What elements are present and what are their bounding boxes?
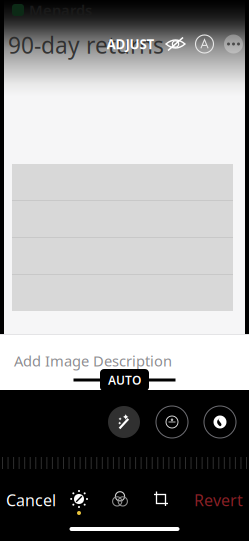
staticText: AUTO [108, 372, 141, 388]
button[interactable]: Auto enhance [108, 406, 140, 438]
button[interactable]: Add Image Description [0, 343, 172, 378]
staticText: Revert [194, 489, 243, 511]
button[interactable]: Exposure [156, 406, 188, 438]
button[interactable]: Live Text [190, 33, 219, 55]
button[interactable]: Crop [143, 485, 179, 515]
staticText: ADJUST [106, 35, 154, 53]
staticText: 90-day returns [8, 30, 164, 60]
button[interactable]: Filters [102, 485, 138, 515]
button[interactable]: Hide adjustments [161, 33, 190, 55]
button[interactable]: Adjust [61, 485, 97, 515]
staticText: Cancel [6, 489, 56, 511]
button[interactable]: Revert [194, 481, 243, 519]
staticText: Menards [29, 0, 92, 20]
button[interactable]: Cancel [6, 481, 56, 519]
button[interactable]: Brilliance [204, 406, 236, 438]
button[interactable]: More options [219, 33, 248, 55]
staticText: Add Image Description [14, 351, 172, 370]
